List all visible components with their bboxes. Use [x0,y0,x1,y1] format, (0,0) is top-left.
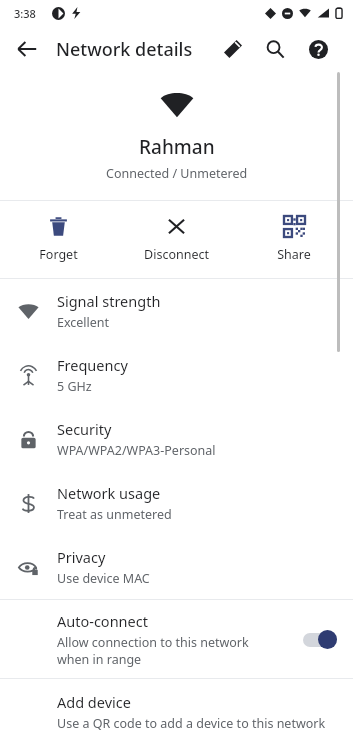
staticText: Network usage [57,483,161,503]
staticText: 3:38 [14,6,36,21]
staticText: Security [57,419,112,439]
button[interactable]: Disconnect [117,201,235,278]
staticText: 5 GHz [57,378,92,395]
button[interactable]: Edit [214,30,252,68]
staticText: WPA/WPA2/WPA3-Personal [57,442,216,459]
staticText: Frequency [57,355,128,375]
staticText: Network details [56,37,193,62]
button[interactable]: Back [6,28,48,70]
staticText: Signal strength [57,291,161,311]
button[interactable]: Signal strength [0,279,353,343]
staticText: Forget [39,246,78,263]
staticText: Share [277,246,311,263]
staticText: Treat as unmetered [57,506,172,523]
button[interactable]: Auto-connect [0,600,353,678]
staticText: Excellent [57,314,110,331]
button[interactable]: Network usage [0,471,353,535]
button[interactable]: Forget [0,201,117,278]
button[interactable]: Share [235,201,353,278]
staticText: Allow connection to this network when in… [57,634,249,668]
staticText: Rahman [139,134,215,160]
button[interactable]: Security [0,407,353,471]
staticText: Disconnect [144,246,209,263]
button[interactable]: Add device [0,679,353,731]
staticText: Add device [57,692,131,712]
staticText: Connected / Unmetered [106,165,248,182]
button[interactable]: Privacy [0,535,353,599]
button[interactable]: Search [256,30,294,68]
staticText: Privacy [57,547,106,567]
staticText: Use device MAC [57,570,150,587]
staticText: Auto-connect [57,611,148,631]
button[interactable]: Frequency [0,343,353,407]
button[interactable]: Help [299,30,337,68]
staticText: Use a QR code to add a device to this ne… [57,715,326,731]
